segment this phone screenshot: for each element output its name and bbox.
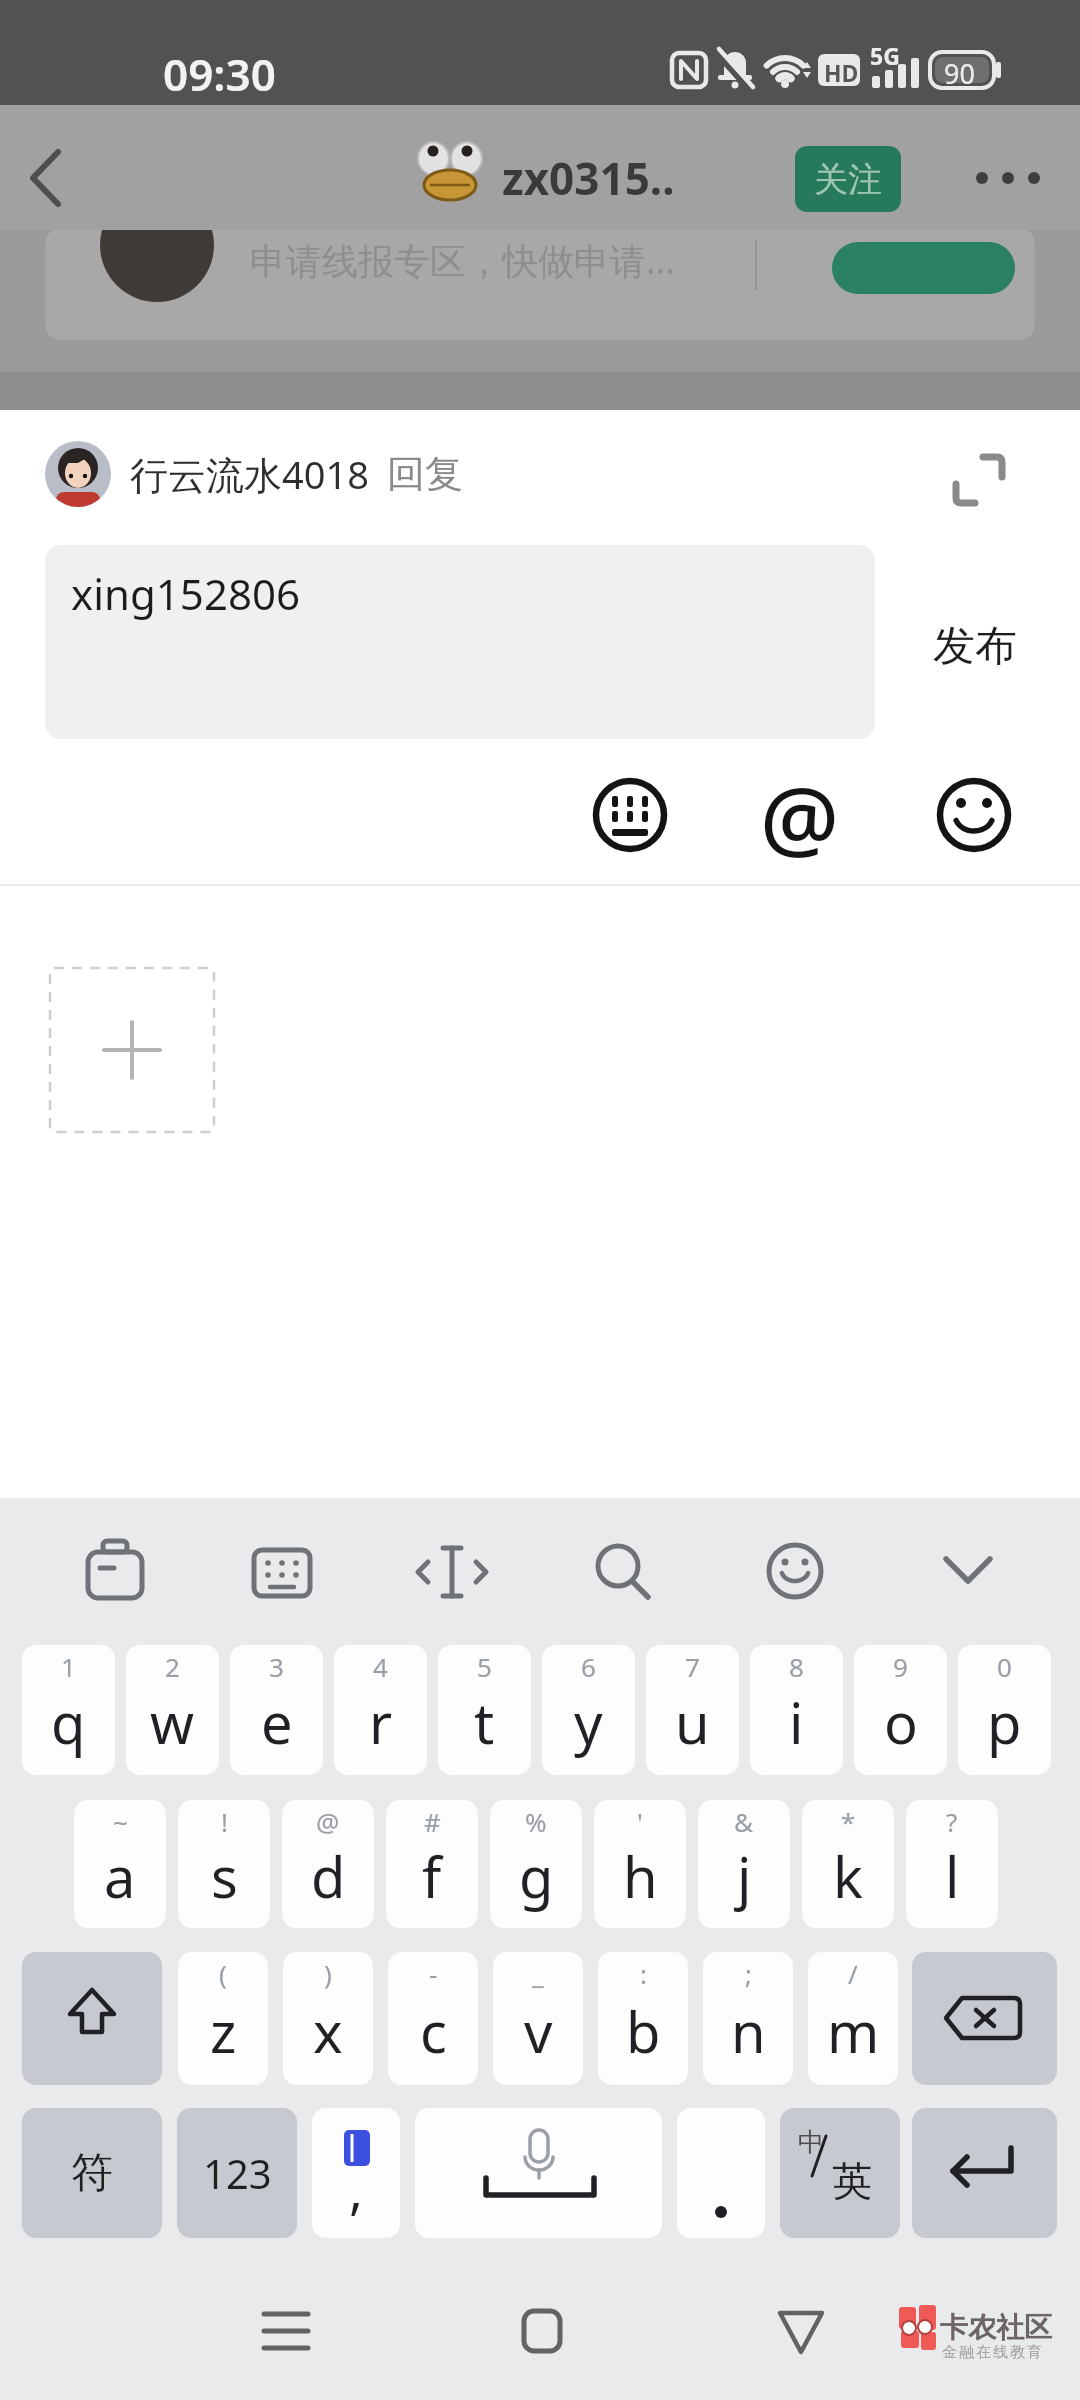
button[interactable]: ~: [74, 1800, 166, 1928]
button[interactable]: 4: [334, 1645, 427, 1775]
staticText: *: [841, 1804, 856, 1839]
button[interactable]: [592, 778, 668, 854]
staticText: v: [524, 1993, 553, 2069]
button[interactable]: [582, 1532, 662, 1612]
staticText: !: [221, 1804, 228, 1839]
staticText: 8: [789, 1649, 804, 1684]
staticText: 5: [477, 1649, 492, 1684]
button[interactable]: ': [594, 1800, 686, 1928]
staticText: b: [626, 1993, 661, 2069]
staticText: /: [848, 1956, 858, 1991]
staticText: z: [210, 1993, 237, 2069]
staticText: 0: [997, 1649, 1012, 1684]
button[interactable]: *: [802, 1800, 894, 1928]
staticText: 1: [61, 1649, 76, 1684]
staticText: 关注: [814, 158, 882, 201]
button[interactable]: xing152806: [45, 545, 875, 739]
staticText: t: [474, 1684, 495, 1760]
staticText: r: [369, 1684, 393, 1760]
staticText: 123: [203, 2146, 272, 2200]
staticText: k: [833, 1838, 863, 1914]
button[interactable]: [912, 2108, 1057, 2238]
button[interactable]: [765, 778, 841, 854]
button[interactable]: [242, 1532, 322, 1612]
button[interactable]: 发布: [933, 620, 1017, 673]
staticText: 3: [269, 1649, 284, 1684]
button[interactable]: #: [386, 1800, 478, 1928]
staticText: d: [311, 1838, 346, 1914]
staticText: ?: [946, 1804, 958, 1839]
button[interactable]: [755, 1532, 835, 1612]
staticText: 符: [71, 2147, 113, 2200]
button[interactable]: 8: [750, 1645, 843, 1775]
button[interactable]: [912, 1952, 1057, 2085]
button[interactable]: [20, 145, 80, 211]
button[interactable]: [502, 2292, 582, 2372]
button[interactable]: [677, 2108, 765, 2238]
button[interactable]: :: [598, 1952, 688, 2085]
staticText: 中: [798, 2126, 824, 2159]
button[interactable]: @: [282, 1800, 374, 1928]
button[interactable]: &: [698, 1800, 790, 1928]
staticText: j: [737, 1838, 752, 1914]
button[interactable]: ?: [906, 1800, 998, 1928]
staticText: i: [789, 1684, 804, 1760]
staticText: u: [675, 1684, 710, 1760]
staticText: h: [623, 1838, 658, 1914]
staticText: 7: [685, 1649, 700, 1684]
staticText: ,: [349, 2153, 363, 2224]
staticText: w: [150, 1684, 195, 1760]
button[interactable]: 0: [958, 1645, 1051, 1775]
staticText: 4: [373, 1649, 388, 1684]
staticText: zx0315..: [502, 148, 675, 208]
button[interactable]: ;: [703, 1952, 793, 2085]
button[interactable]: 中: [780, 2108, 900, 2238]
button[interactable]: (: [178, 1952, 268, 2085]
button[interactable]: [412, 1532, 492, 1612]
button[interactable]: 符: [22, 2108, 162, 2238]
button[interactable]: ): [283, 1952, 373, 2085]
staticText: 行云流水4018: [130, 448, 369, 500]
staticText: l: [945, 1838, 960, 1914]
button[interactable]: [415, 2108, 662, 2238]
button[interactable]: 2: [126, 1645, 219, 1775]
staticText: -: [429, 1956, 438, 1991]
staticText: 09:30: [163, 44, 276, 104]
button[interactable]: 3: [230, 1645, 323, 1775]
staticText: 回复: [387, 450, 463, 498]
button[interactable]: 5: [438, 1645, 531, 1775]
button[interactable]: 6: [542, 1645, 635, 1775]
button[interactable]: %: [490, 1800, 582, 1928]
staticText: @: [316, 1804, 340, 1839]
button[interactable]: /: [808, 1952, 898, 2085]
button[interactable]: [75, 1532, 155, 1612]
button[interactable]: 123: [177, 2108, 297, 2238]
button[interactable]: ,: [312, 2108, 400, 2238]
button[interactable]: [928, 1532, 1008, 1612]
staticText: 英: [832, 2156, 872, 2206]
staticText: e: [261, 1684, 293, 1760]
staticText: 5G: [870, 40, 900, 71]
button[interactable]: 9: [854, 1645, 947, 1775]
button[interactable]: [50, 968, 214, 1132]
staticText: s: [211, 1838, 238, 1914]
button[interactable]: [936, 778, 1012, 854]
button[interactable]: 7: [646, 1645, 739, 1775]
staticText: ~: [113, 1804, 128, 1839]
button[interactable]: _: [493, 1952, 583, 2085]
button[interactable]: 关注: [795, 146, 901, 212]
button[interactable]: !: [178, 1800, 270, 1928]
button[interactable]: [965, 150, 1051, 206]
staticText: 90: [944, 55, 975, 92]
staticText: ': [637, 1804, 643, 1839]
staticText: m: [827, 1993, 880, 2069]
button[interactable]: [22, 1952, 162, 2085]
button[interactable]: -: [388, 1952, 478, 2085]
button[interactable]: [761, 2292, 841, 2372]
staticText: g: [519, 1838, 554, 1914]
button[interactable]: [246, 2292, 326, 2372]
button[interactable]: [940, 440, 1016, 516]
staticText: q: [51, 1684, 86, 1760]
staticText: 2: [165, 1649, 180, 1684]
button[interactable]: 1: [22, 1645, 115, 1775]
